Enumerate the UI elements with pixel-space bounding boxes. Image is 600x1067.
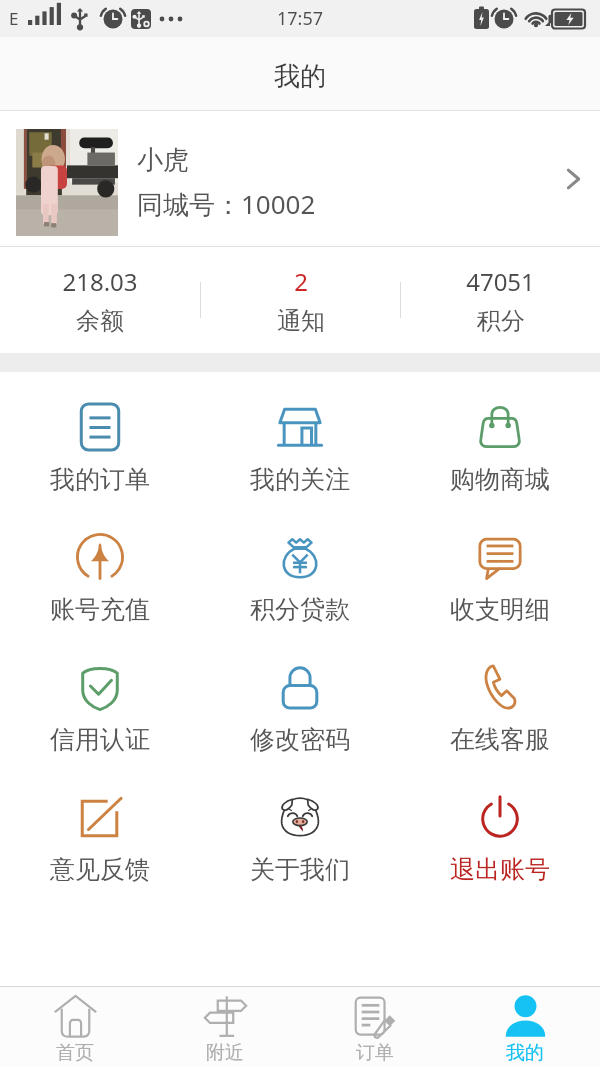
- button[interactable]: 首页: [0, 987, 150, 1067]
- button[interactable]: 小虎: [0, 111, 600, 247]
- staticText: 小虎: [137, 144, 189, 177]
- staticText: 信用认证: [50, 724, 150, 755]
- button[interactable]: 我的订单: [0, 372, 200, 502]
- staticText: 在线客服: [450, 724, 550, 755]
- staticText: 购物商城: [450, 464, 550, 495]
- staticText: 17:57: [277, 6, 324, 31]
- button[interactable]: 收支明细: [400, 502, 600, 632]
- staticText: 218.03: [62, 265, 138, 298]
- staticText: 同城号：10002: [137, 186, 316, 222]
- button[interactable]: 订单: [300, 987, 450, 1067]
- staticText: 我的关注: [250, 464, 350, 495]
- staticText: 收支明细: [450, 594, 550, 625]
- staticText: 首页: [56, 1041, 94, 1065]
- button[interactable]: 退出账号: [400, 762, 600, 892]
- staticText: 关于我们: [250, 854, 350, 885]
- staticText: 意见反馈: [50, 854, 150, 885]
- staticText: 积分: [477, 306, 525, 336]
- staticText: 订单: [356, 1041, 394, 1065]
- button[interactable]: 购物商城: [400, 372, 600, 502]
- button[interactable]: 218.03: [0, 265, 200, 336]
- button[interactable]: 在线客服: [400, 632, 600, 762]
- button[interactable]: 账号充值: [0, 502, 200, 632]
- staticText: 我的订单: [50, 464, 150, 495]
- button[interactable]: 意见反馈: [0, 762, 200, 892]
- staticText: 47051: [466, 265, 535, 298]
- button[interactable]: 积分贷款: [200, 502, 400, 632]
- staticText: 修改密码: [250, 724, 350, 755]
- staticText: E: [9, 7, 19, 30]
- staticText: 我的: [506, 1041, 544, 1065]
- staticText: 账号充值: [50, 594, 150, 625]
- button[interactable]: 2: [201, 265, 400, 336]
- staticText: 积分贷款: [250, 594, 350, 625]
- staticText: 退出账号: [450, 854, 550, 885]
- button[interactable]: 关于我们: [200, 762, 400, 892]
- button[interactable]: 附近: [150, 987, 300, 1067]
- button[interactable]: 修改密码: [200, 632, 400, 762]
- button[interactable]: 我的: [450, 987, 600, 1067]
- staticText: 通知: [277, 306, 325, 336]
- staticText: 我的: [274, 60, 326, 93]
- button[interactable]: 信用认证: [0, 632, 200, 762]
- staticText: 2: [294, 265, 308, 298]
- staticText: 余额: [76, 306, 124, 336]
- staticText: 附近: [206, 1041, 244, 1065]
- button[interactable]: 47051: [401, 265, 600, 336]
- button[interactable]: 我的关注: [200, 372, 400, 502]
